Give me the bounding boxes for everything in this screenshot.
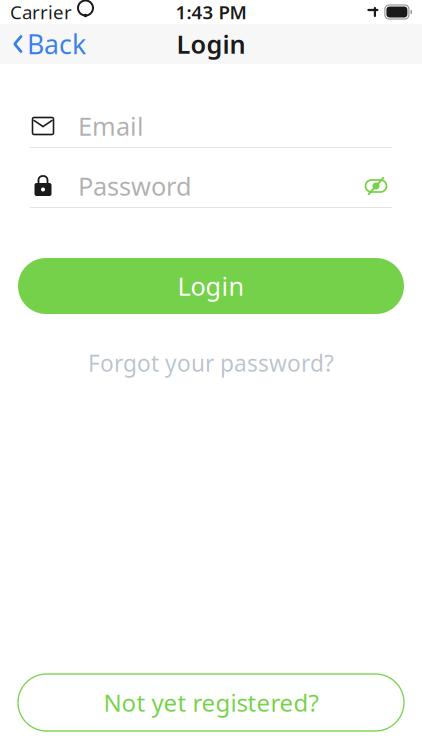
button[interactable]: Not yet registered? xyxy=(18,674,404,731)
button[interactable]: Back xyxy=(2,20,96,68)
staticText: Email xyxy=(78,109,144,143)
staticText: Carrier xyxy=(10,0,72,24)
button[interactable]: Forgot your password? xyxy=(74,342,348,384)
staticText: Login xyxy=(176,27,245,61)
button[interactable]: Login xyxy=(18,258,404,314)
button[interactable]: Hide password xyxy=(360,170,392,202)
staticText: Forgot your password? xyxy=(88,348,334,378)
staticText: Password xyxy=(78,169,192,203)
staticText: Not yet registered? xyxy=(103,687,318,718)
staticText: Back xyxy=(27,26,86,62)
staticText: 1:43 PM xyxy=(175,0,246,24)
staticText: Login xyxy=(177,269,244,303)
